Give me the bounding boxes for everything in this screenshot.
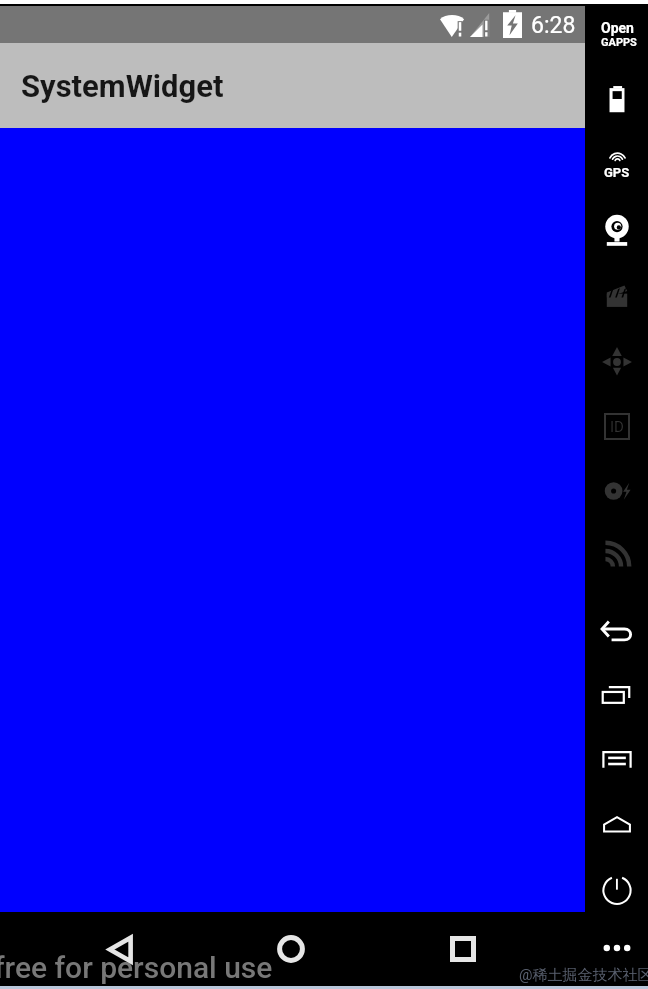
button[interactable]: Battery — [585, 69, 648, 131]
button[interactable]: Recent apps — [425, 911, 501, 987]
button[interactable]: Network — [585, 524, 648, 586]
button[interactable]: Menu — [585, 728, 648, 790]
staticText: free for personal use — [0, 950, 273, 985]
staticText: GPS — [604, 165, 630, 180]
button[interactable]: Overview — [585, 663, 648, 725]
button[interactable]: Phone ID — [585, 395, 648, 457]
button[interactable]: Record screen — [585, 264, 648, 326]
button[interactable]: Back — [585, 598, 648, 660]
staticText: SystemWidget — [21, 68, 224, 104]
button[interactable]: GPS — [585, 134, 648, 196]
staticText: Open — [601, 20, 634, 36]
staticText: 6:28 — [531, 12, 576, 39]
button[interactable]: Back — [82, 911, 158, 987]
button[interactable]: Directional pad — [585, 331, 648, 393]
button[interactable]: Power — [585, 858, 648, 920]
button[interactable]: More — [585, 917, 648, 979]
button[interactable]: Disk — [585, 460, 648, 522]
button[interactable]: Home — [585, 793, 648, 855]
staticText: ID — [610, 418, 624, 436]
button[interactable]: Webcam — [585, 199, 648, 261]
button[interactable]: Home — [253, 911, 329, 987]
staticText: @稀土掘金技术社区 — [519, 966, 648, 985]
staticText: GAPPS — [601, 36, 637, 49]
